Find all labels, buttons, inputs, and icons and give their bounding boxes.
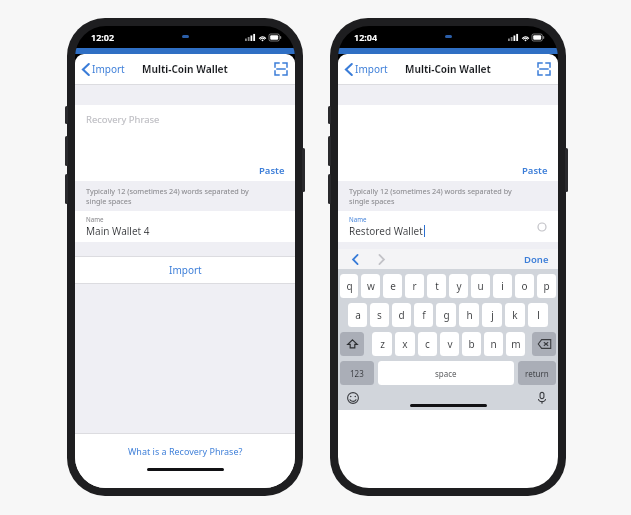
staticText: space [435, 368, 457, 379]
button[interactable]: Scan QR code [530, 54, 558, 84]
button[interactable]: Name [75, 211, 295, 242]
button[interactable]: n [484, 332, 503, 356]
staticText: Paste [522, 164, 548, 177]
staticText: Multi-Coin Wallet [405, 62, 491, 76]
button[interactable]: Dictation [535, 391, 549, 405]
staticText: h [466, 308, 473, 322]
staticText: Import [92, 62, 125, 76]
button[interactable]: Emoji keyboard [346, 391, 360, 405]
staticText: return [525, 368, 549, 379]
staticText: r [412, 279, 417, 293]
staticText: 123 [350, 368, 364, 379]
button[interactable]: t [427, 274, 446, 298]
button[interactable]: b [462, 332, 481, 356]
button[interactable]: w [361, 274, 380, 298]
staticText: Name [349, 215, 367, 223]
staticText: Recovery Phrase [86, 113, 160, 126]
button[interactable]: Paste [338, 105, 558, 181]
button[interactable]: space [378, 361, 514, 385]
staticText: u [477, 279, 484, 293]
button[interactable]: Next field [372, 250, 390, 268]
staticText: w [367, 279, 375, 293]
staticText: t [435, 279, 439, 293]
button[interactable]: m [506, 332, 525, 356]
button[interactable]: Import [75, 257, 295, 283]
button[interactable]: i [493, 274, 512, 298]
button[interactable]: Scan QR code [267, 54, 295, 84]
staticText: y [456, 279, 462, 293]
button[interactable]: y [449, 274, 468, 298]
staticText: k [512, 308, 518, 322]
staticText: Main Wallet 4 [86, 224, 150, 238]
staticText: m [511, 337, 521, 351]
staticText: Import [355, 62, 388, 76]
staticText: s [377, 308, 382, 322]
button[interactable]: Import [338, 54, 394, 84]
button[interactable]: Key [532, 332, 556, 356]
staticText: n [490, 337, 497, 351]
staticText: 12:02 [91, 31, 115, 43]
button[interactable]: c [418, 332, 437, 356]
button[interactable]: Done [524, 253, 549, 266]
staticText: Multi-Coin Wallet [142, 62, 228, 76]
button[interactable]: h [459, 303, 479, 327]
button[interactable]: x [395, 332, 415, 356]
staticText: p [543, 279, 550, 293]
button[interactable]: 123 [340, 361, 374, 385]
staticText: z [380, 337, 385, 351]
button[interactable]: o [515, 274, 534, 298]
button[interactable]: k [505, 303, 525, 327]
button[interactable]: Clear text [535, 220, 549, 234]
button[interactable]: Recovery Phrase [75, 105, 295, 181]
button[interactable]: g [436, 303, 456, 327]
staticText: e [390, 279, 396, 293]
button[interactable]: What is a Recovery Phrase? [75, 434, 295, 468]
staticText: 12:04 [354, 31, 378, 43]
staticText: v [447, 337, 453, 351]
button[interactable]: Import [75, 54, 131, 84]
button[interactable]: p [537, 274, 556, 298]
button[interactable]: u [471, 274, 490, 298]
staticText: Import [169, 263, 202, 277]
staticText: o [521, 279, 528, 293]
staticText: Name [86, 215, 104, 223]
button[interactable]: l [528, 303, 548, 327]
button[interactable]: f [414, 303, 433, 327]
button[interactable]: v [440, 332, 459, 356]
button[interactable]: e [383, 274, 402, 298]
button[interactable]: z [372, 332, 392, 356]
button[interactable]: Previous field [346, 250, 364, 268]
staticText: f [422, 308, 426, 322]
button[interactable]: j [482, 303, 502, 327]
staticText: x [402, 337, 408, 351]
staticText: g [443, 308, 450, 322]
staticText: Paste [259, 164, 285, 177]
staticText: q [346, 279, 353, 293]
button[interactable]: r [405, 274, 424, 298]
button[interactable]: d [392, 303, 411, 327]
staticText: j [491, 308, 494, 322]
staticText: Typically 12 (sometimes 24) words separa… [86, 186, 249, 206]
staticText: d [398, 308, 405, 322]
staticText: Done [524, 253, 549, 266]
button[interactable]: a [348, 303, 367, 327]
staticText: c [425, 337, 430, 351]
button[interactable]: Key [340, 332, 364, 356]
button[interactable]: Paste [522, 164, 548, 177]
button[interactable]: q [340, 274, 358, 298]
staticText: Restored Wallet [349, 224, 423, 238]
staticText: a [355, 308, 361, 322]
button[interactable]: Name [338, 211, 558, 242]
button[interactable]: s [370, 303, 389, 327]
staticText: l [537, 308, 540, 322]
button[interactable]: return [518, 361, 556, 385]
staticText: What is a Recovery Phrase? [128, 445, 243, 457]
staticText: Typically 12 (sometimes 24) words separa… [349, 186, 512, 206]
staticText: b [468, 337, 475, 351]
staticText: i [501, 279, 504, 293]
button[interactable]: Paste [259, 164, 285, 177]
